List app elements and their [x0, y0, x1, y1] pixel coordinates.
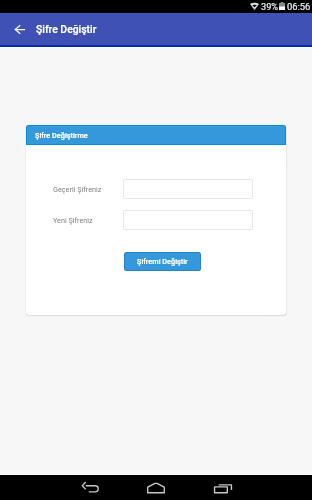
staticText: Yeni Şifreniz: [53, 216, 93, 224]
button[interactable]: Recents: [200, 475, 246, 500]
button[interactable]: Back: [67, 475, 113, 500]
button[interactable]: Home: [133, 475, 179, 500]
staticText: Şifre Değiştirme: [35, 131, 88, 140]
staticText: Geçerli Şifreniz: [53, 185, 102, 193]
button[interactable]: Şifremi Değiştir: [125, 253, 200, 270]
staticText: 06:56: [287, 1, 311, 12]
button[interactable]: Back: [7, 13, 33, 45]
button[interactable]: [123, 210, 253, 230]
button[interactable]: [123, 179, 253, 199]
staticText: 39%: [261, 1, 279, 12]
staticText: Şifremi Değiştir: [137, 257, 188, 266]
staticText: Şifre Değiştir: [36, 23, 97, 35]
